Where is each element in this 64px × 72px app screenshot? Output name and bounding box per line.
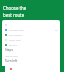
staticText: Eco friendly (9, 33, 23, 36)
staticText: Choose the (3, 5, 27, 11)
staticText: Turn left (5, 59, 18, 63)
staticText: Avoid tolls (9, 38, 21, 41)
button[interactable]: Start navigation (2, 66, 60, 72)
staticText: Head north (5, 54, 18, 57)
staticText: best route (3, 12, 25, 18)
button[interactable]: Eco friendly (2, 32, 60, 37)
staticText: Shortest way (9, 28, 24, 31)
button[interactable]: Shortest way (2, 27, 60, 32)
staticText: Steps (5, 48, 13, 52)
button[interactable] (2, 22, 60, 27)
button[interactable]: Via M4 (2, 42, 60, 47)
staticText: 24 (55, 28, 58, 31)
staticText: Via M4 (9, 43, 17, 46)
button[interactable]: Avoid tolls (2, 37, 60, 42)
